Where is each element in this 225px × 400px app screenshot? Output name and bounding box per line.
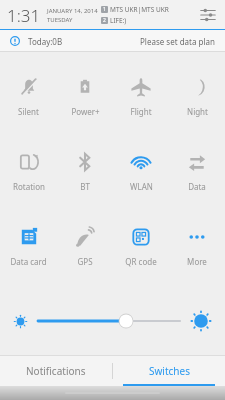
staticText: 1: [103, 6, 106, 13]
button[interactable]: Notifications: [0, 356, 112, 386]
button[interactable]: Power+: [57, 58, 113, 133]
staticText: Silent: [18, 106, 39, 117]
staticText: More: [187, 256, 207, 267]
staticText: GPS: [77, 256, 93, 267]
staticText: Notifications: [26, 364, 86, 378]
button[interactable]: BT: [57, 133, 113, 208]
staticText: 2: [103, 17, 106, 24]
button[interactable]: Rotation: [0, 133, 57, 208]
staticText: TUESDAY: [47, 16, 73, 24]
staticText: Please set data plan: [140, 36, 215, 47]
staticText: Data card: [10, 256, 47, 267]
staticText: Switches: [149, 364, 190, 378]
staticText: Flight: [130, 106, 152, 117]
button[interactable]: GPS: [57, 208, 113, 283]
button[interactable]: More: [169, 208, 225, 283]
button[interactable]: Today:0B: [0, 30, 225, 52]
button[interactable]: Switches: [113, 356, 225, 386]
button[interactable]: Silent: [0, 58, 57, 133]
button[interactable]: Data card: [0, 208, 57, 283]
button[interactable]: Data: [169, 133, 225, 208]
staticText: Today:0B: [28, 36, 63, 47]
button[interactable]: Brightness: [38, 310, 180, 332]
staticText: MTS UKR|MTS UKR: [110, 5, 169, 14]
button[interactable]: WLAN: [113, 133, 169, 208]
staticText: Power+: [71, 106, 100, 117]
staticText: Night: [187, 106, 208, 117]
staticText: LIFE:): [110, 16, 127, 25]
staticText: WLAN: [130, 181, 153, 192]
button[interactable]: Night: [169, 58, 225, 133]
staticText: Rotation: [13, 181, 45, 192]
staticText: BT: [80, 181, 90, 192]
button[interactable]: Settings: [195, 2, 221, 28]
button[interactable]: Flight: [113, 58, 169, 133]
button[interactable]: QR code: [113, 208, 169, 283]
staticText: JANUARY 14, 2014: [47, 7, 98, 15]
staticText: QR code: [125, 256, 157, 267]
staticText: Data: [188, 181, 206, 192]
staticText: 1:31: [7, 4, 41, 27]
